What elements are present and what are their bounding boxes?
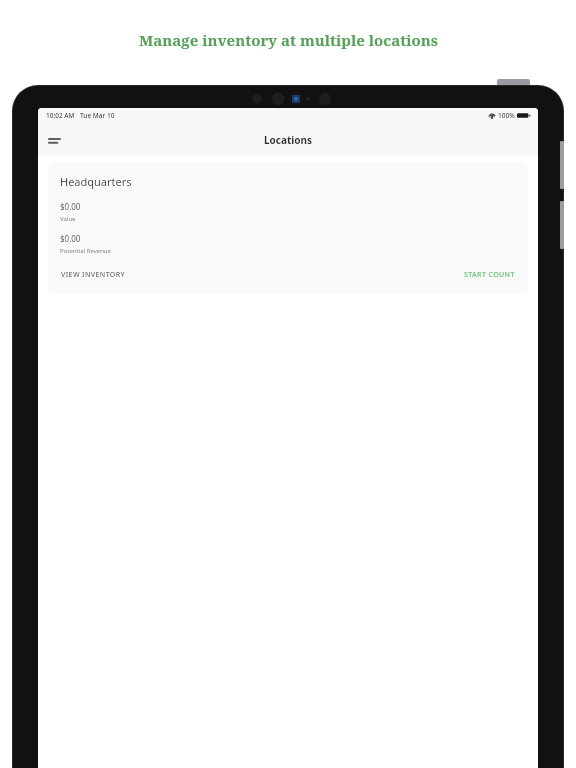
staticText: Headquarters <box>60 174 132 189</box>
staticText: $0.00 <box>60 201 81 212</box>
button[interactable]: Open navigation menu <box>42 128 66 152</box>
staticText: Locations <box>264 133 313 147</box>
staticText: Tue Mar 10 <box>80 111 115 120</box>
staticText: 100% <box>498 111 515 120</box>
staticText: START COUNT <box>464 270 515 280</box>
button[interactable]: VIEW INVENTORY <box>60 268 127 282</box>
staticText: Value <box>60 215 76 223</box>
staticText: $0.00 <box>60 233 81 244</box>
staticText: VIEW INVENTORY <box>61 270 126 280</box>
staticText: Potential Revenue <box>60 247 111 255</box>
staticText: 10:02 AM <box>46 111 75 120</box>
staticText: Manage inventory at multiple locations <box>139 30 438 50</box>
button[interactable]: START COUNT <box>463 268 516 282</box>
button[interactable]: Headquarters <box>48 162 528 294</box>
